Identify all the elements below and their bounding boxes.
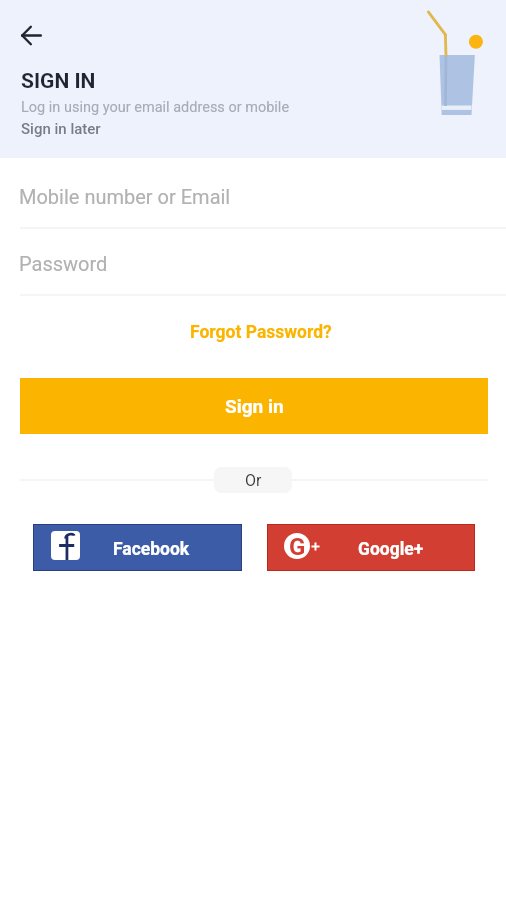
staticText: Log in using your email address or mobil… [21, 99, 290, 116]
button[interactable]: Sign in later [21, 120, 101, 138]
button[interactable]: Sign in [20, 378, 488, 434]
staticText: Sign in later [21, 120, 101, 138]
button[interactable]: Back [7, 11, 55, 59]
button[interactable]: G [268, 525, 474, 570]
staticText: Google+ [358, 539, 424, 560]
staticText: Password [19, 252, 108, 275]
staticText: Mobile number or Email [19, 185, 231, 208]
staticText: Forgot Password? [190, 322, 332, 343]
staticText: G [289, 533, 306, 559]
staticText: SIGN IN [21, 69, 96, 94]
staticText: Sign in [225, 395, 284, 417]
button[interactable]: Forgot Password? [180, 317, 342, 348]
staticText: Or [245, 471, 262, 490]
staticText: Facebook [113, 539, 190, 560]
button[interactable]: Facebook [34, 525, 241, 570]
